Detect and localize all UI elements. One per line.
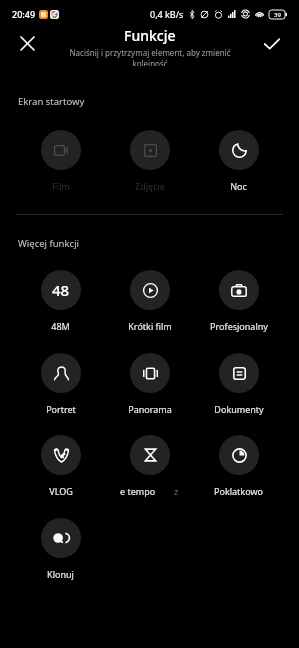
staticText: Film: [52, 180, 70, 192]
button[interactable]: Profesjonalny: [194, 270, 283, 332]
staticText: 0,4 kB/s: [150, 8, 184, 20]
button[interactable]: Krótki film: [105, 270, 194, 332]
staticText: 20:49: [12, 8, 36, 20]
staticText: e tempo: [120, 485, 156, 497]
button[interactable]: Dokumenty: [194, 353, 283, 415]
staticText: VLOG: [49, 485, 73, 497]
button[interactable]: Film: [16, 130, 105, 192]
staticText: Portret: [46, 403, 76, 415]
staticText: 48M: [51, 320, 70, 332]
staticText: Profesjonalny: [210, 320, 268, 332]
button[interactable]: Noc: [194, 130, 283, 192]
button[interactable]: Klonuj: [16, 518, 105, 580]
staticText: Więcej funkcji: [18, 237, 80, 250]
button[interactable]: VLOG: [16, 435, 105, 497]
button[interactable]: 48: [16, 270, 105, 332]
button[interactable]: Zamknij: [14, 30, 41, 57]
staticText: Zdjęcie: [135, 180, 165, 192]
button[interactable]: Zatwierdź: [258, 30, 285, 57]
button[interactable]: Poklatkowo: [194, 435, 283, 497]
staticText: Funkcje: [124, 26, 176, 45]
staticText: Ekran startowy: [18, 95, 85, 108]
staticText: Naciśnij i przytrzymaj element, aby zmie…: [57, 47, 243, 66]
staticText: Noc: [230, 180, 247, 192]
staticText: 48: [52, 280, 70, 300]
button[interactable]: Zdjęcie: [105, 130, 194, 192]
staticText: Panorama: [128, 403, 172, 415]
button[interactable]: Panorama: [105, 353, 194, 415]
staticText: z: [174, 485, 179, 497]
button[interactable]: e tempo: [105, 435, 194, 497]
staticText: Krótki film: [128, 320, 172, 332]
staticText: Dokumenty: [214, 403, 264, 415]
staticText: Klonuj: [47, 568, 74, 580]
staticText: 39: [274, 11, 281, 19]
button[interactable]: Portret: [16, 353, 105, 415]
staticText: Poklatkowo: [214, 485, 263, 497]
